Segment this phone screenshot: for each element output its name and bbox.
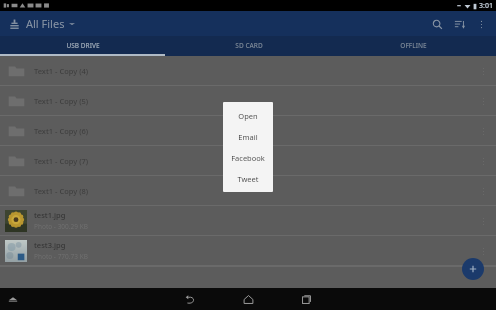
button[interactable]: test1.jpg	[0, 206, 496, 235]
staticText: All Files	[26, 16, 65, 31]
staticText: test3.jpg	[34, 240, 66, 250]
staticText: 3:01	[479, 1, 493, 11]
staticText: Text1 - Copy (5)	[34, 96, 89, 106]
staticText: Email	[238, 132, 258, 142]
button[interactable]: USB DRIVE	[0, 36, 166, 54]
button[interactable]: Facebook	[223, 147, 273, 168]
button[interactable]: SD CARD	[166, 36, 331, 54]
button[interactable]: All Files	[26, 16, 75, 31]
button[interactable]: Open	[223, 105, 273, 126]
button[interactable]: Back	[173, 288, 207, 310]
staticText: Text1 - Copy (7)	[34, 156, 89, 166]
staticText: SD CARD	[235, 41, 263, 50]
button[interactable]: Home	[231, 288, 265, 310]
staticText: OFFLINE	[400, 41, 427, 50]
staticText: Text1 - Copy (8)	[34, 186, 89, 196]
button[interactable]: Search	[426, 13, 448, 35]
staticText: Photo - 300.29 KB	[34, 222, 88, 231]
button[interactable]: Text1 - Copy (6)	[0, 116, 496, 145]
button[interactable]: Text1 - Copy (5)	[0, 86, 496, 115]
button[interactable]: Storage notification	[5, 291, 21, 307]
button[interactable]: Text1 - Copy (7)	[0, 146, 496, 175]
staticText: Open	[238, 111, 258, 121]
staticText: Photo - 770.73 KB	[34, 252, 88, 261]
button[interactable]: Tweet	[223, 168, 273, 189]
button[interactable]: OFFLINE	[331, 36, 496, 54]
staticText: Text1 - Copy (6)	[34, 126, 89, 136]
button[interactable]: Email	[223, 126, 273, 147]
staticText: Tweet	[237, 174, 259, 184]
staticText: Text1 - Copy (4)	[34, 66, 89, 76]
button[interactable]: Sort	[448, 13, 470, 35]
button[interactable]: More options	[472, 240, 494, 262]
staticText: USB DRIVE	[66, 41, 100, 50]
button[interactable]: Text1 - Copy (8)	[0, 176, 496, 205]
staticText: Facebook	[231, 153, 265, 163]
button[interactable]: More options	[470, 13, 492, 35]
button[interactable]: Storage	[5, 15, 23, 33]
staticText: test1.jpg	[34, 210, 66, 220]
button[interactable]: Add	[462, 258, 484, 280]
button[interactable]: test3.jpg	[0, 236, 496, 265]
button[interactable]: Recents	[289, 288, 323, 310]
